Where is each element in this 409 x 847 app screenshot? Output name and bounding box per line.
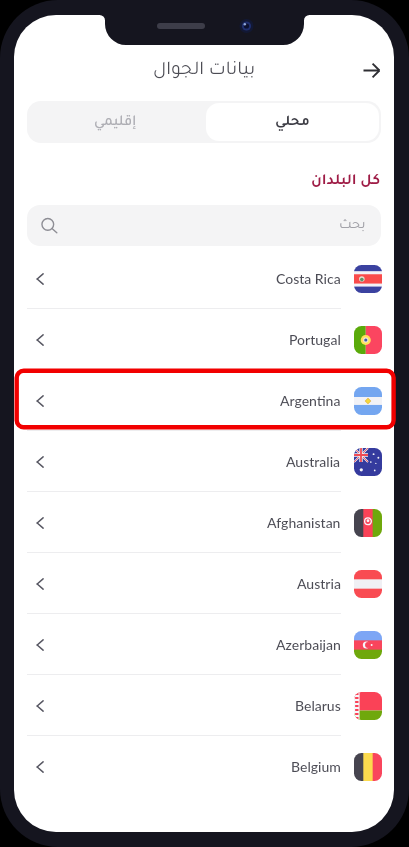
staticText: محلي	[275, 115, 310, 130]
button[interactable]: Afghanistan	[14, 492, 394, 553]
staticText: بحث	[339, 219, 366, 233]
button[interactable]: محلي	[206, 103, 379, 141]
button[interactable]: Azerbaijan	[14, 614, 394, 675]
button[interactable]: Australia	[14, 431, 394, 492]
button[interactable]: إقليمي	[27, 101, 204, 143]
button[interactable]: Belarus	[14, 675, 394, 736]
button[interactable]: Back	[353, 55, 389, 86]
staticText: بيانات الجوال	[153, 61, 256, 80]
button[interactable]: Belgium	[14, 736, 394, 797]
staticText: Costa Rica	[276, 270, 341, 287]
button[interactable]: بحث	[27, 205, 381, 246]
staticText: Afghanistan	[267, 514, 341, 531]
button[interactable]: Austria	[14, 553, 394, 614]
staticText: Portugal	[289, 331, 341, 348]
button[interactable]: Argentina	[14, 370, 394, 431]
staticText: Argentina	[280, 392, 341, 409]
staticText: كل البلدان	[311, 174, 381, 190]
staticText: Belgium	[291, 758, 341, 775]
staticText: إقليمي	[94, 115, 137, 130]
staticText: Azerbaijan	[276, 636, 341, 653]
button[interactable]: Portugal	[14, 309, 394, 370]
button[interactable]: Costa Rica	[14, 248, 394, 309]
staticText: Australia	[286, 453, 341, 470]
staticText: Austria	[297, 575, 341, 592]
staticText: Belarus	[295, 697, 341, 714]
